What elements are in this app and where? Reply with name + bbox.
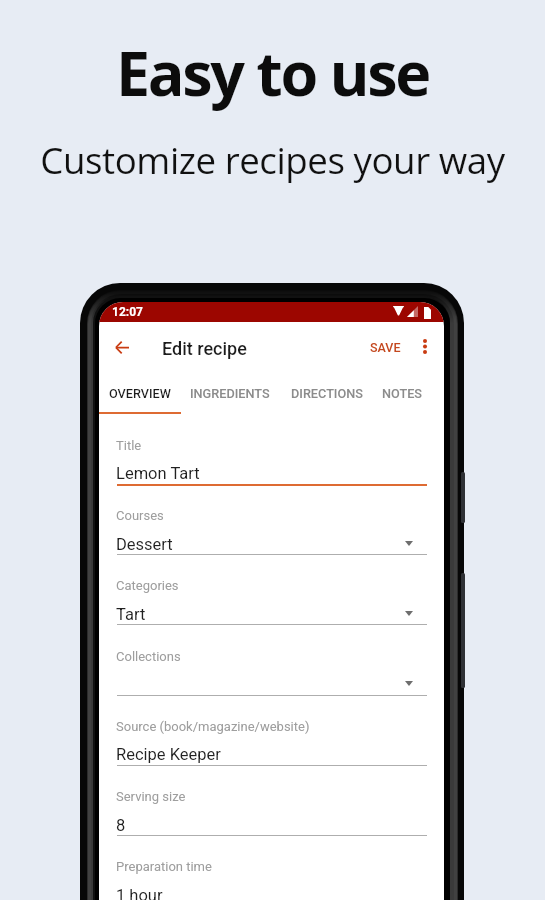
staticText: Source (book/magazine/website) xyxy=(116,719,310,734)
staticText: Categories xyxy=(116,578,179,593)
staticText: Serving size xyxy=(116,789,186,804)
button[interactable] xyxy=(116,717,426,787)
button[interactable]: OVERVIEW xyxy=(100,377,180,409)
staticText: Collections xyxy=(116,649,181,664)
staticText: SAVE xyxy=(370,340,401,355)
staticText: OVERVIEW xyxy=(109,386,171,401)
button[interactable]: INGREDIENTS xyxy=(182,377,277,409)
staticText: 12:07 xyxy=(112,305,143,319)
button[interactable] xyxy=(116,436,426,506)
button[interactable]: SAVE xyxy=(361,334,410,360)
button[interactable] xyxy=(116,858,426,900)
staticText: 1 hour xyxy=(116,886,163,900)
staticText: NOTES xyxy=(382,386,423,401)
button[interactable]: More options xyxy=(412,333,438,359)
staticText: Customize recipes your way xyxy=(0,135,545,185)
staticText: Easy to use xyxy=(0,31,545,114)
staticText: Dessert xyxy=(116,535,173,554)
button[interactable] xyxy=(116,787,426,857)
staticText: Lemon Tart xyxy=(116,464,200,483)
staticText: Edit recipe xyxy=(162,338,247,359)
button[interactable]: NOTES xyxy=(373,377,432,409)
staticText: INGREDIENTS xyxy=(190,386,270,401)
staticText: Tart xyxy=(116,605,146,624)
button[interactable] xyxy=(116,576,426,646)
button[interactable]: Back xyxy=(109,334,135,360)
button[interactable] xyxy=(116,506,426,576)
button[interactable]: DIRECTIONS xyxy=(281,377,373,409)
button[interactable] xyxy=(116,647,426,717)
staticText: DIRECTIONS xyxy=(291,386,363,401)
staticText: Courses xyxy=(116,508,164,523)
staticText: 8 xyxy=(116,816,126,835)
staticText: Preparation time xyxy=(116,859,212,874)
staticText: Recipe Keeper xyxy=(116,745,221,764)
staticText: Title xyxy=(116,438,142,453)
